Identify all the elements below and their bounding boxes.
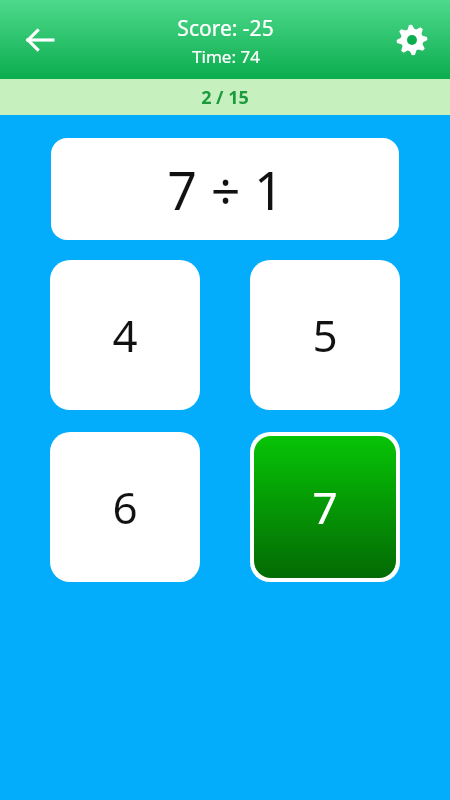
button[interactable]: 5 xyxy=(250,260,400,410)
button[interactable]: 4 xyxy=(50,260,200,410)
staticText: 5 xyxy=(312,305,338,365)
staticText: Time: 74 xyxy=(192,45,260,68)
button[interactable]: 7 ÷ 1 xyxy=(51,138,399,240)
button[interactable]: Settings xyxy=(386,14,438,66)
staticText: Score: -25 xyxy=(177,14,274,43)
button[interactable]: 7 xyxy=(250,432,400,582)
staticText: 6 xyxy=(112,477,138,537)
button[interactable]: Back xyxy=(14,14,66,66)
staticText: 7 xyxy=(312,477,338,537)
staticText: 4 xyxy=(112,305,138,365)
button[interactable]: 6 xyxy=(50,432,200,582)
staticText: 7 ÷ 1 xyxy=(167,154,284,225)
staticText: 2 / 15 xyxy=(201,85,249,110)
